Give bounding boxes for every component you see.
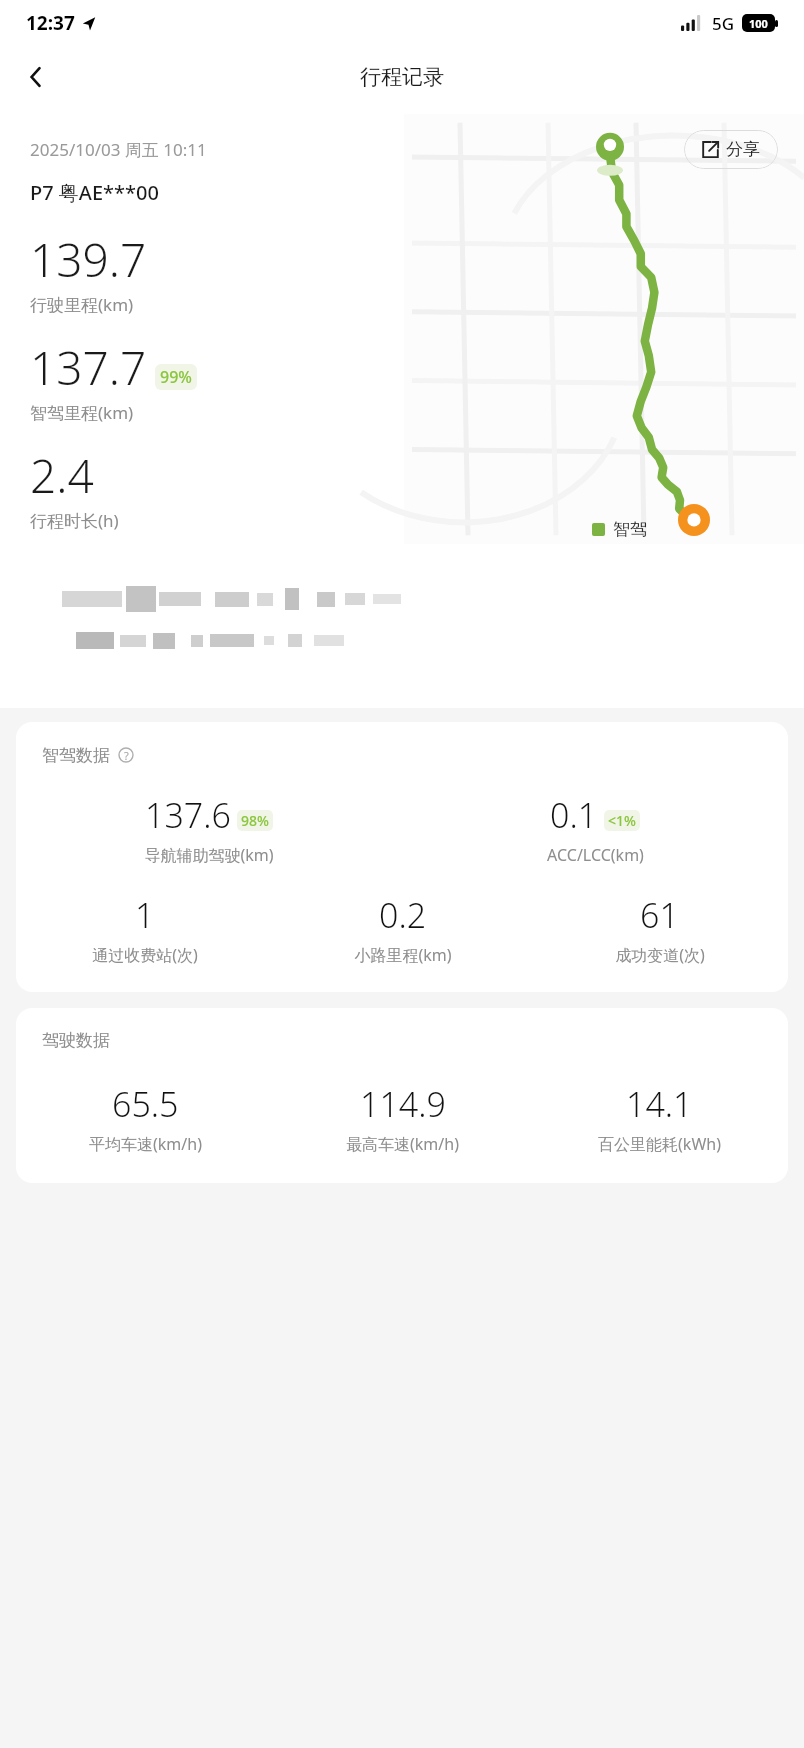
staticText: 100 (749, 16, 768, 31)
staticText: 百公里能耗(kWh) (598, 1133, 721, 1155)
staticText: 14.1 (626, 1081, 693, 1127)
staticText: 导航辅助驾驶(km) (144, 844, 274, 866)
button[interactable]: 14.1 (531, 1081, 788, 1155)
staticText: 驾驶数据 (42, 1030, 110, 1051)
staticText: 行驶里程(km) (30, 293, 134, 316)
staticText: 12:37 (26, 10, 75, 36)
button[interactable]: 114.9 (274, 1081, 531, 1155)
staticText: 1 (135, 892, 155, 938)
staticText: 分享 (726, 139, 760, 160)
staticText: 139.7 (30, 228, 147, 291)
staticText: 137.7 (30, 336, 147, 399)
staticText: P7 粤AE***00 (30, 179, 159, 206)
staticText: 行程记录 (360, 64, 444, 90)
staticText: 智驾里程(km) (30, 401, 134, 424)
staticText: 65.5 (112, 1081, 179, 1127)
staticText: 行程时长(h) (30, 509, 119, 532)
staticText: 98% (241, 811, 269, 830)
button[interactable]: Back (10, 51, 62, 103)
staticText: 2025/10/03 周五 10:11 (30, 138, 207, 161)
staticText: 智驾数据 (42, 745, 110, 766)
button[interactable]: 65.5 (16, 1081, 274, 1155)
button[interactable]: 0.2 (274, 892, 531, 966)
staticText: 0.2 (379, 892, 427, 938)
staticText: <1% (608, 811, 636, 830)
staticText: 137.6 (145, 792, 231, 838)
button[interactable]: 137.6 (16, 792, 402, 866)
staticText: 通过收费站(次) (92, 944, 198, 966)
staticText: 5G (712, 12, 735, 35)
staticText: ACC/LCC(km) (547, 844, 644, 866)
staticText: 0.1 (550, 792, 598, 838)
staticText: 最高车速(km/h) (346, 1133, 459, 1155)
staticText: 2.4 (30, 444, 94, 507)
staticText: 61 (640, 892, 679, 938)
button[interactable]: 1 (16, 892, 274, 966)
staticText: 平均车速(km/h) (89, 1133, 202, 1155)
staticText: 智驾 (613, 519, 647, 540)
staticText: ? (124, 748, 129, 763)
staticText: 成功变道(次) (615, 944, 705, 966)
button[interactable]: 分享 (684, 130, 778, 169)
staticText: 114.9 (360, 1081, 446, 1127)
button[interactable]: 61 (531, 892, 788, 966)
button[interactable]: 智驾数据说明 (115, 744, 137, 766)
staticText: 小路里程(km) (354, 944, 452, 966)
button[interactable]: 0.1 (402, 792, 788, 866)
staticText: 99% (160, 366, 192, 388)
